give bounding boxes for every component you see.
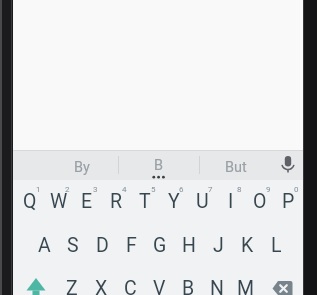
staticText: Q	[23, 190, 37, 213]
button[interactable]: U	[188, 181, 216, 221]
button[interactable]: D	[88, 225, 116, 265]
staticText: R	[110, 190, 123, 213]
button[interactable]: O	[246, 181, 274, 221]
button[interactable]: B	[174, 268, 202, 295]
staticText: V	[153, 277, 166, 295]
button[interactable]: G	[146, 225, 174, 265]
staticText: But	[225, 159, 247, 176]
staticText: 2	[65, 185, 70, 194]
staticText: Z	[66, 277, 78, 295]
button[interactable]: V	[145, 268, 173, 295]
staticText: U	[196, 190, 209, 213]
staticText: P	[282, 190, 295, 213]
staticText: 5	[151, 185, 156, 194]
staticText: 6	[179, 185, 184, 194]
button[interactable]: A	[30, 225, 58, 265]
staticText: 8	[237, 185, 242, 194]
staticText: 4	[122, 185, 127, 194]
staticText: 7	[208, 185, 213, 194]
button[interactable]: J	[204, 225, 232, 265]
button[interactable]: M	[232, 268, 260, 295]
button[interactable]	[22, 268, 50, 295]
staticText: 0	[294, 185, 299, 194]
staticText: A	[38, 234, 51, 257]
button[interactable]: T	[131, 181, 159, 221]
button[interactable]: But	[206, 155, 266, 179]
staticText: B	[154, 157, 164, 174]
staticText: N	[210, 277, 224, 295]
button[interactable]: Z	[58, 268, 86, 295]
button[interactable]	[276, 153, 300, 177]
button[interactable]: E	[73, 181, 101, 221]
staticText: T	[139, 190, 151, 213]
staticText: O	[253, 190, 267, 213]
staticText: K	[241, 234, 254, 257]
button[interactable]: X	[87, 268, 115, 295]
staticText: Y	[168, 190, 180, 213]
button[interactable]: By	[52, 155, 112, 179]
staticText: C	[124, 277, 137, 295]
staticText: W	[50, 190, 68, 213]
staticText: F	[126, 234, 137, 257]
button[interactable]: B	[129, 153, 189, 177]
staticText: H	[182, 234, 196, 257]
staticText: I	[228, 190, 234, 213]
button[interactable]: L	[262, 225, 290, 265]
button[interactable]: C	[116, 268, 144, 295]
staticText: 9	[266, 185, 271, 194]
button[interactable]: Y	[160, 181, 188, 221]
button[interactable]: K	[233, 225, 261, 265]
button[interactable]: P	[274, 181, 302, 221]
staticText: D	[96, 234, 109, 257]
button[interactable]: F	[117, 225, 145, 265]
staticText: 3	[93, 185, 98, 194]
staticText: L	[271, 234, 282, 257]
button[interactable]	[269, 279, 297, 295]
staticText: B	[182, 277, 195, 295]
button[interactable]: Q	[16, 181, 44, 221]
button[interactable]: S	[59, 225, 87, 265]
button[interactable]: W	[45, 181, 73, 221]
staticText: M	[237, 277, 255, 295]
button[interactable]: N	[203, 268, 231, 295]
staticText: E	[81, 190, 93, 213]
staticText: S	[67, 234, 79, 257]
staticText: By	[74, 159, 90, 176]
staticText: J	[213, 234, 224, 257]
button[interactable]: R	[102, 181, 130, 221]
button[interactable]: I	[217, 181, 245, 221]
staticText: G	[153, 234, 167, 257]
staticText: 1	[36, 185, 41, 194]
button[interactable]: H	[175, 225, 203, 265]
staticText: X	[95, 277, 108, 295]
